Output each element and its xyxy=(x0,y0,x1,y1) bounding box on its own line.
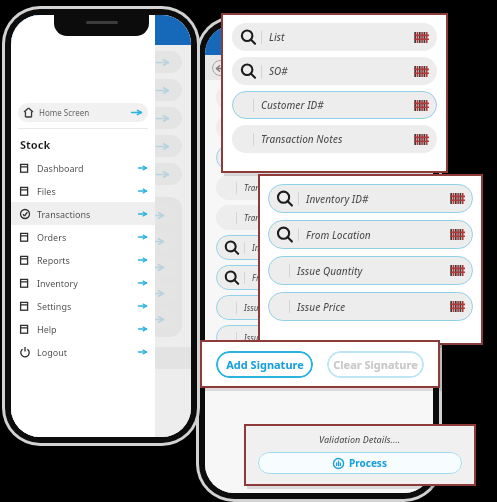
staticText: Process xyxy=(349,456,387,470)
button[interactable]: Transaction Notes xyxy=(216,175,422,200)
button[interactable]: List xyxy=(232,23,437,51)
button[interactable]: SO# xyxy=(216,115,422,140)
staticText: Inventory xyxy=(37,277,78,289)
button[interactable]: Transaction Date xyxy=(216,205,422,230)
button[interactable]: Home Screen xyxy=(18,103,148,122)
button[interactable]: Settings xyxy=(11,294,155,317)
staticText: Dashboard xyxy=(37,162,84,174)
staticText: Transaction Notes xyxy=(244,182,310,193)
button[interactable]: Customer ID# xyxy=(232,91,437,119)
staticText: Files xyxy=(37,185,56,197)
button[interactable]: Customer ID# xyxy=(216,145,422,170)
staticText: Issue Quantity xyxy=(297,264,363,278)
staticText: Clear Signature xyxy=(338,364,408,376)
button[interactable]: List xyxy=(216,85,422,110)
button[interactable]: SO# xyxy=(232,57,437,85)
staticText: Customer ID# xyxy=(244,152,295,163)
button[interactable]: From Location xyxy=(268,220,473,249)
staticText: Inventory ID# xyxy=(306,192,369,206)
button[interactable]: Files xyxy=(11,179,155,202)
staticText: Add Signature xyxy=(226,357,304,372)
button[interactable]: Process xyxy=(258,452,462,474)
staticText: List xyxy=(252,92,265,103)
staticText: Issue Price xyxy=(297,300,346,314)
staticText: Help xyxy=(37,323,57,335)
button[interactable]: Add Signature xyxy=(216,358,314,381)
staticText: Customer ID# xyxy=(261,98,324,112)
staticText: Add Signature xyxy=(233,364,297,376)
staticText: Orders xyxy=(37,231,67,243)
staticText: Inventory ID# xyxy=(252,242,302,253)
staticText: From Location xyxy=(306,228,371,242)
button[interactable]: Help xyxy=(11,317,155,340)
button[interactable]: Orders xyxy=(11,225,155,248)
button[interactable]: Clear Signature xyxy=(327,351,424,378)
button[interactable]: Logout xyxy=(11,340,155,363)
staticText: SO# xyxy=(269,64,288,78)
staticText: Settings xyxy=(37,300,72,312)
button[interactable]: Inventory ID# xyxy=(268,184,473,213)
staticText: Clear Signature xyxy=(333,357,418,372)
staticText: Logout xyxy=(37,346,67,358)
staticText: Issue Quantity xyxy=(244,302,297,313)
button[interactable]: Issue Price xyxy=(216,325,422,350)
button[interactable]: Issue Quantity xyxy=(216,295,422,320)
staticText: Stock xyxy=(20,137,51,152)
button[interactable]: From Location xyxy=(216,265,422,290)
button[interactable]: Inventory xyxy=(11,271,155,294)
staticText: SO# xyxy=(252,122,268,133)
button[interactable]: Back xyxy=(212,60,228,76)
staticText: Transactions xyxy=(37,208,91,220)
button[interactable]: Inventory ID# xyxy=(216,235,422,260)
staticText: Validation Details.... xyxy=(319,433,401,445)
staticText: Transaction Date xyxy=(244,212,306,223)
button[interactable]: Transactions xyxy=(11,202,155,225)
button[interactable]: Transaction Notes xyxy=(232,125,437,153)
button[interactable]: Issue Quantity xyxy=(268,256,473,285)
button[interactable]: Dashboard xyxy=(11,156,155,179)
staticText: Issue Price xyxy=(244,332,283,343)
button[interactable]: Add Signature xyxy=(216,351,313,378)
button[interactable]: Issue Price xyxy=(268,292,473,321)
staticText: From Location xyxy=(252,272,304,283)
staticText: List xyxy=(269,30,285,44)
staticText: Transaction Notes xyxy=(261,132,343,146)
button[interactable]: Clear Signature xyxy=(323,358,422,381)
staticText: Home Screen xyxy=(39,107,90,118)
staticText: Reports xyxy=(37,254,70,266)
button[interactable]: Reports xyxy=(11,248,155,271)
